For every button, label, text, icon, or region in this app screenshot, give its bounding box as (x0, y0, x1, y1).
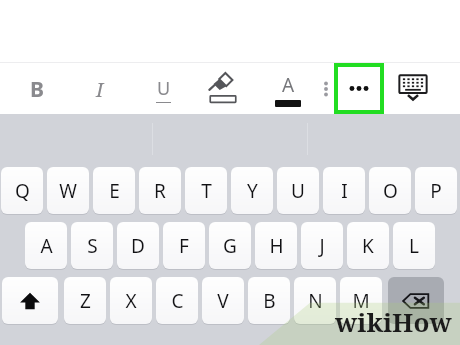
staticText: O (383, 178, 398, 204)
staticText: Z (80, 288, 91, 314)
button[interactable]: G (209, 222, 251, 269)
button[interactable]: H (255, 222, 297, 269)
staticText: D (131, 233, 145, 259)
staticText: U (291, 178, 305, 204)
button[interactable]: R (139, 167, 181, 214)
staticText: Y (247, 178, 258, 204)
staticText: F (179, 233, 189, 259)
staticText: wikiHow (335, 304, 452, 339)
button[interactable]: Bold (15, 67, 59, 111)
button[interactable]: B (248, 277, 290, 324)
staticText: J (319, 233, 325, 259)
staticText: L (409, 233, 419, 259)
staticText: A (282, 72, 295, 98)
button[interactable]: Highlight (201, 67, 245, 111)
staticText: V (217, 288, 229, 314)
button[interactable]: Hide keyboard (391, 67, 435, 111)
button[interactable]: N (294, 277, 336, 324)
staticText: Q (15, 178, 30, 204)
button[interactable]: Q (1, 167, 43, 214)
button[interactable]: A (25, 222, 67, 269)
staticText: P (430, 178, 442, 204)
button[interactable]: T (185, 167, 227, 214)
button[interactable]: S (71, 222, 113, 269)
staticText: I (96, 76, 104, 103)
button[interactable]: K (347, 222, 389, 269)
button[interactable]: More options (334, 63, 384, 114)
button[interactable]: O (369, 167, 411, 214)
button[interactable]: Underline (141, 67, 185, 111)
button[interactable]: D (117, 222, 159, 269)
staticText: M (352, 288, 370, 314)
staticText: B (263, 288, 276, 314)
button[interactable]: I (323, 167, 365, 214)
button[interactable]: F (163, 222, 205, 269)
button[interactable]: U (277, 167, 319, 214)
button[interactable]: W (47, 167, 89, 214)
button[interactable]: E (93, 167, 135, 214)
staticText: A (40, 233, 53, 259)
button[interactable]: Italic (78, 67, 122, 111)
button[interactable]: Z (64, 277, 106, 324)
button[interactable]: Text colour (266, 67, 310, 111)
staticText: T (201, 178, 212, 204)
staticText: S (87, 233, 98, 259)
button[interactable]: J (301, 222, 343, 269)
button[interactable]: P (415, 167, 457, 214)
button[interactable]: L (393, 222, 435, 269)
staticText: H (269, 233, 284, 259)
staticText: E (109, 178, 120, 204)
staticText: B (30, 75, 44, 104)
staticText: X (125, 288, 137, 314)
staticText: U (157, 76, 171, 101)
staticText: G (223, 233, 237, 259)
button[interactable]: V (202, 277, 244, 324)
button[interactable]: C (156, 277, 198, 324)
button[interactable]: Shift (2, 277, 58, 324)
staticText: K (362, 233, 374, 259)
staticText: C (171, 288, 184, 314)
staticText: W (59, 178, 77, 204)
button[interactable]: Backspace (388, 277, 444, 324)
staticText: R (154, 178, 166, 204)
staticText: N (308, 288, 323, 314)
staticText: I (341, 178, 348, 204)
button[interactable]: X (110, 277, 152, 324)
button[interactable]: Y (231, 167, 273, 214)
button[interactable]: M (340, 277, 382, 324)
